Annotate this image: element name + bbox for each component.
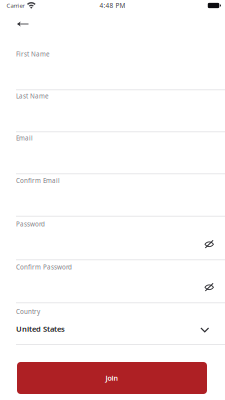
staticText: Password xyxy=(16,220,45,228)
button[interactable]: Back xyxy=(0,16,38,43)
staticText: United States xyxy=(16,324,65,334)
button[interactable]: Join xyxy=(17,362,207,394)
staticText: Carrier xyxy=(6,1,24,9)
staticText: Confirm Email xyxy=(16,176,60,185)
staticText: Join xyxy=(105,373,118,383)
staticText: First Name xyxy=(16,50,50,58)
staticText: Confirm Password xyxy=(16,263,72,271)
staticText: Country xyxy=(16,307,40,316)
button[interactable]: Show Confirm Password xyxy=(200,280,218,295)
button[interactable]: Country xyxy=(0,299,225,345)
button[interactable]: Show Password xyxy=(200,237,218,252)
staticText: Email xyxy=(16,134,33,142)
staticText: 4:48 PM xyxy=(99,1,125,10)
staticText: Last Name xyxy=(16,92,49,100)
